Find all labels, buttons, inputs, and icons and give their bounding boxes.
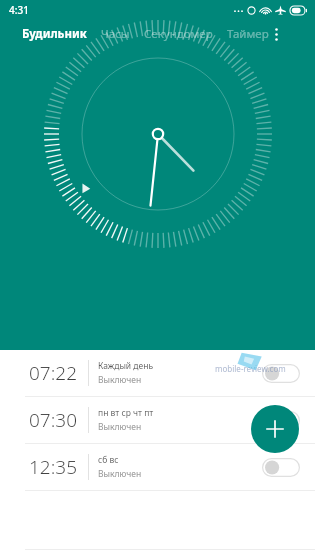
button[interactable]: Toggle alarm 07:22 bbox=[260, 360, 302, 386]
staticText: Секундомер bbox=[144, 26, 213, 42]
staticText: сб вс bbox=[98, 454, 119, 466]
staticText: 07:22 bbox=[29, 360, 78, 386]
button[interactable]: Toggle alarm 07:30 bbox=[260, 407, 302, 433]
staticText: Выключен bbox=[98, 421, 142, 433]
staticText: Будильник bbox=[22, 26, 87, 42]
staticText: пн вт ср чт пт bbox=[98, 407, 154, 419]
staticText: Выключен bbox=[98, 468, 142, 480]
staticText: 12:35 bbox=[29, 454, 78, 480]
button[interactable]: 07:30 bbox=[0, 397, 315, 443]
button[interactable]: Секундомер bbox=[144, 26, 213, 42]
button[interactable]: Toggle alarm 12:35 bbox=[260, 454, 302, 480]
staticText: 07:30 bbox=[29, 407, 78, 433]
button[interactable]: Таймер bbox=[227, 26, 269, 42]
button[interactable]: Будильник bbox=[22, 26, 87, 42]
button[interactable]: Add alarm bbox=[251, 405, 299, 453]
staticText: Таймер bbox=[227, 26, 269, 42]
staticText: mobile-review.com bbox=[215, 363, 286, 374]
staticText: Каждый день bbox=[98, 360, 154, 372]
button[interactable]: Часы bbox=[101, 26, 130, 42]
staticText: Часы bbox=[101, 26, 130, 42]
button[interactable]: 07:22 bbox=[0, 350, 315, 396]
staticText: 4:31 bbox=[9, 3, 29, 17]
button[interactable]: 12:35 bbox=[0, 444, 315, 490]
button[interactable]: More options bbox=[270, 23, 282, 45]
staticText: Выключен bbox=[98, 374, 142, 386]
